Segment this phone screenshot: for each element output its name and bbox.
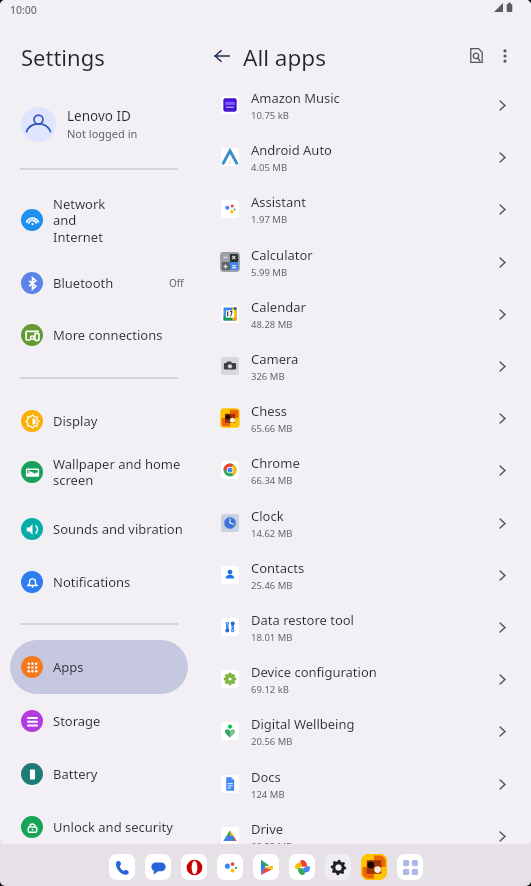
button[interactable]: Battery bbox=[10, 749, 188, 799]
staticText: 68.22 MB bbox=[251, 840, 293, 844]
staticText: Bluetooth bbox=[53, 274, 169, 292]
staticText: 69.12 kB bbox=[251, 683, 290, 696]
staticText: Chess bbox=[251, 402, 288, 420]
button[interactable]: Network and Internet bbox=[10, 195, 188, 245]
staticText: 25.46 MB bbox=[251, 579, 293, 592]
button[interactable]: Drive bbox=[196, 810, 531, 844]
staticText: Assistant bbox=[251, 193, 307, 211]
staticText: 48.28 MB bbox=[251, 318, 293, 331]
button[interactable]: Wallpaper and home screen bbox=[10, 447, 188, 497]
staticText: 20.56 MB bbox=[251, 735, 293, 748]
staticText: 18.01 MB bbox=[251, 631, 293, 644]
button[interactable]: Calendar bbox=[196, 288, 531, 340]
button[interactable]: Play Store bbox=[253, 854, 279, 880]
button[interactable]: Docs bbox=[196, 758, 531, 810]
button[interactable]: Back bbox=[208, 42, 236, 70]
staticText: Unlock and security bbox=[53, 818, 184, 836]
button[interactable]: Chrome bbox=[196, 444, 531, 496]
staticText: Sounds and vibration bbox=[53, 520, 184, 538]
staticText: Apps bbox=[53, 658, 184, 676]
button[interactable]: Notifications bbox=[10, 557, 188, 607]
staticText: Camera bbox=[251, 350, 299, 368]
staticText: Calculator bbox=[251, 246, 313, 264]
staticText: Chrome bbox=[251, 454, 300, 472]
staticText: Docs bbox=[251, 768, 281, 786]
staticText: Lenovo ID bbox=[67, 107, 131, 125]
staticText: Contacts bbox=[251, 559, 305, 577]
staticText: Network and Internet bbox=[53, 195, 184, 245]
button[interactable]: Display bbox=[10, 396, 188, 446]
staticText: Drive bbox=[251, 820, 284, 838]
button[interactable]: Clock bbox=[196, 497, 531, 549]
button[interactable]: Calculator bbox=[196, 236, 531, 288]
staticText: Device configuration bbox=[251, 663, 377, 681]
button[interactable]: Chess bbox=[196, 392, 531, 444]
staticText: Battery bbox=[53, 765, 184, 783]
button[interactable]: Search apps bbox=[462, 41, 490, 69]
staticText: Clock bbox=[251, 507, 284, 525]
button[interactable]: More connections bbox=[10, 310, 188, 360]
button[interactable]: Photos bbox=[289, 854, 315, 880]
button[interactable]: Opera bbox=[181, 854, 207, 880]
button[interactable]: Data restore tool bbox=[196, 601, 531, 653]
staticText: Calendar bbox=[251, 298, 306, 316]
button[interactable]: Amazon Music bbox=[196, 79, 531, 131]
button[interactable]: Assistant bbox=[217, 854, 243, 880]
button[interactable]: Storage bbox=[10, 696, 188, 746]
staticText: 65.66 MB bbox=[251, 422, 293, 435]
staticText: 10.75 kB bbox=[251, 109, 290, 122]
button[interactable]: Device configuration bbox=[196, 653, 531, 705]
staticText: Notifications bbox=[53, 573, 184, 591]
button[interactable]: Settings bbox=[325, 854, 351, 880]
button[interactable]: Sounds and vibration bbox=[10, 504, 188, 554]
button[interactable]: Chess bbox=[361, 854, 387, 880]
staticText: Storage bbox=[53, 712, 184, 730]
staticText: 4.05 MB bbox=[251, 161, 288, 174]
button[interactable]: All apps bbox=[397, 854, 423, 880]
button[interactable]: Android Auto bbox=[196, 131, 531, 183]
staticText: Off bbox=[169, 276, 184, 290]
button[interactable]: Bluetooth bbox=[10, 258, 188, 308]
button[interactable]: Lenovo ID bbox=[0, 99, 188, 149]
button[interactable]: Phone bbox=[109, 854, 135, 880]
button[interactable]: Apps bbox=[10, 640, 188, 694]
button[interactable]: Unlock and security bbox=[10, 802, 188, 844]
staticText: Settings bbox=[21, 42, 105, 72]
staticText: 10:00 bbox=[10, 3, 37, 17]
staticText: Android Auto bbox=[251, 141, 332, 159]
staticText: 124 MB bbox=[251, 788, 285, 801]
staticText: 326 MB bbox=[251, 370, 285, 383]
staticText: 1.97 MB bbox=[251, 213, 288, 226]
staticText: Not logged in bbox=[67, 126, 138, 141]
staticText: Digital Wellbeing bbox=[251, 715, 355, 733]
button[interactable]: Contacts bbox=[196, 549, 531, 601]
staticText: 14.62 MB bbox=[251, 527, 293, 540]
staticText: 66.34 MB bbox=[251, 474, 293, 487]
button[interactable]: Camera bbox=[196, 340, 531, 392]
staticText: All apps bbox=[243, 42, 326, 73]
staticText: More connections bbox=[53, 326, 184, 344]
staticText: 5.99 MB bbox=[251, 266, 288, 279]
button[interactable]: Messages bbox=[145, 854, 171, 880]
staticText: Amazon Music bbox=[251, 89, 340, 107]
button[interactable]: Assistant bbox=[196, 183, 531, 235]
button[interactable]: Digital Wellbeing bbox=[196, 705, 531, 757]
button[interactable]: More options bbox=[491, 42, 519, 70]
staticText: Data restore tool bbox=[251, 611, 354, 629]
staticText: Wallpaper and home screen bbox=[53, 455, 184, 489]
staticText: Display bbox=[53, 412, 184, 430]
